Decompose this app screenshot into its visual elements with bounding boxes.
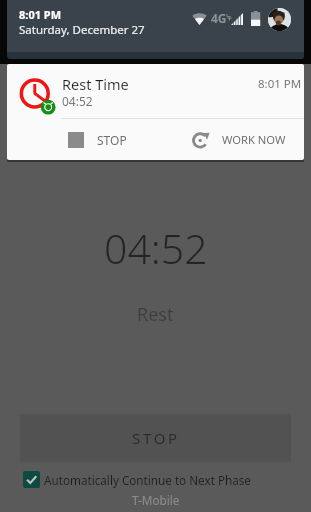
staticText: T-Mobile	[132, 492, 180, 508]
button[interactable]: Rest Time	[7, 64, 304, 160]
staticText: 8:01 PM	[258, 76, 302, 92]
staticText: WORK NOW	[222, 132, 286, 147]
staticText: Rest	[137, 302, 174, 327]
staticText: Automatically Continue to Next Phase	[44, 472, 251, 488]
staticText: 8:01 PM	[19, 7, 62, 22]
staticText: 04:52	[62, 93, 93, 109]
staticText: STOP	[132, 428, 180, 448]
button[interactable]: User profile	[268, 8, 291, 31]
button[interactable]: Automatically Continue to Next Phase	[23, 471, 251, 488]
staticText: 4G	[211, 10, 227, 26]
staticText: STOP	[97, 132, 127, 148]
staticText: 04:52	[104, 220, 208, 276]
button[interactable]: STOP	[7, 119, 157, 160]
button[interactable]: WORK NOW	[157, 119, 304, 160]
staticText: Rest Time	[62, 74, 129, 94]
staticText: Saturday, December 27	[19, 22, 145, 38]
